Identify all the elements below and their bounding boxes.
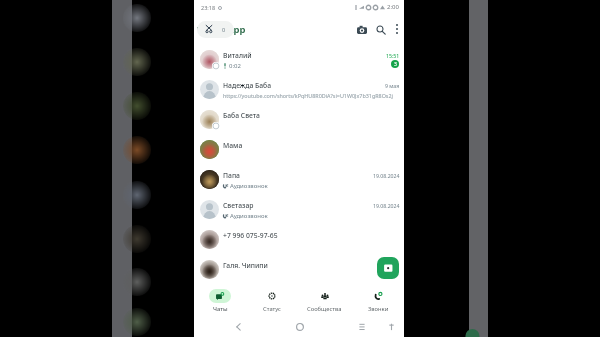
button[interactable]: Светазар bbox=[194, 194, 404, 224]
button[interactable]: Галя. Чипипи bbox=[194, 254, 404, 284]
staticText: 23:18 bbox=[201, 4, 216, 11]
staticText: Аудиозвонок bbox=[230, 182, 268, 190]
staticText: Надежда Баба bbox=[223, 81, 272, 90]
staticText: 15:51 bbox=[386, 52, 400, 59]
button[interactable]: Чаты bbox=[194, 286, 246, 316]
staticText: 19.08.2024 bbox=[373, 172, 400, 179]
staticText: 9 мая bbox=[385, 82, 400, 89]
staticText: 19.08.2024 bbox=[373, 202, 400, 209]
staticText: WhatsApp bbox=[197, 23, 246, 36]
staticText: Аудиозвонок bbox=[230, 212, 268, 220]
button[interactable]: Звонки bbox=[351, 286, 404, 316]
button[interactable]: Виталий bbox=[194, 44, 404, 74]
button[interactable]: Статус bbox=[246, 286, 298, 316]
button[interactable]: Мама bbox=[194, 134, 404, 164]
button[interactable]: +7 996 075-97-65 bbox=[194, 224, 404, 254]
button[interactable]: Camera bbox=[353, 21, 371, 39]
staticText: +7 996 075-97-65 bbox=[223, 231, 278, 240]
staticText: 0:02 bbox=[229, 62, 241, 70]
staticText: 2:00 bbox=[387, 3, 399, 11]
button[interactable]: Screen recorder bbox=[197, 21, 234, 38]
button[interactable]: Сообщества bbox=[298, 286, 351, 316]
button[interactable]: More options bbox=[389, 21, 405, 37]
staticText: Светазар bbox=[223, 201, 254, 210]
staticText: 0 bbox=[222, 26, 226, 33]
button[interactable]: Надежда Баба bbox=[194, 74, 404, 104]
staticText: https://youtube.com/shorts/kPqHU8R0DiA?s… bbox=[223, 92, 393, 99]
staticText: Чаты bbox=[213, 305, 228, 313]
staticText: Виталий bbox=[223, 51, 252, 60]
staticText: Сообщества bbox=[307, 305, 342, 313]
button[interactable]: Папа bbox=[194, 164, 404, 194]
staticText: 3 bbox=[394, 61, 397, 68]
button[interactable]: Search bbox=[372, 21, 389, 38]
staticText: Баба Света bbox=[223, 111, 260, 120]
staticText: Статус bbox=[263, 305, 281, 313]
staticText: Звонки bbox=[368, 305, 389, 313]
staticText: Папа bbox=[223, 171, 240, 180]
button[interactable]: New chat bbox=[377, 257, 399, 279]
staticText: Галя. Чипипи bbox=[223, 261, 268, 270]
button[interactable]: Баба Света bbox=[194, 104, 404, 134]
staticText: Мама bbox=[223, 141, 243, 150]
